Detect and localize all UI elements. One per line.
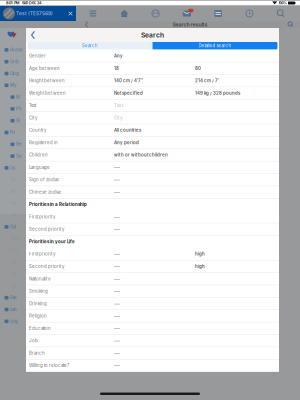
- staticText: Search results: [172, 21, 207, 28]
- staticText: Chinese zodiac: [29, 189, 62, 195]
- button[interactable]: Messages: [171, 6, 202, 21]
- button[interactable]: Smoking: [26, 285, 279, 298]
- button[interactable]: City: [26, 112, 279, 124]
- button[interactable]: Country: [26, 124, 279, 137]
- staticText: Lan: [10, 307, 17, 312]
- button[interactable]: Detailed search: [152, 42, 277, 49]
- button[interactable]: Language: [26, 161, 279, 174]
- staticText: Text: [29, 103, 36, 108]
- button[interactable]: Search: [265, 6, 296, 21]
- staticText: Blo: [10, 189, 17, 194]
- staticText: 214 cm / 7': [195, 78, 219, 83]
- button[interactable]: Profile: [140, 6, 171, 21]
- staticText: City: [114, 115, 123, 120]
- staticText: Search: [82, 43, 98, 48]
- button[interactable]: Bl: [0, 91, 26, 103]
- staticText: 8:01 PM: [6, 1, 19, 5]
- button[interactable]: My: [0, 79, 26, 91]
- staticText: Gender: [29, 53, 46, 59]
- staticText: high: [195, 264, 205, 269]
- button[interactable]: Age between: [26, 62, 279, 75]
- button[interactable]: Uob: [0, 56, 26, 68]
- staticText: Search: [141, 31, 164, 39]
- button[interactable]: Gi: [0, 115, 26, 127]
- staticText: ---: [114, 214, 120, 219]
- button[interactable]: Se: [0, 150, 26, 162]
- button[interactable]: First priority: [26, 248, 279, 260]
- button[interactable]: Lis: [0, 162, 26, 174]
- staticText: Sun Dec 24: [22, 1, 41, 5]
- button[interactable]: Job: [26, 335, 279, 347]
- staticText: Gal: [10, 224, 16, 229]
- staticText: Nationality: [29, 276, 50, 281]
- staticText: ---: [114, 264, 120, 269]
- button[interactable]: Second priority: [26, 223, 279, 236]
- button[interactable]: First priority: [26, 211, 279, 223]
- button[interactable]: Re: [0, 138, 26, 150]
- staticText: Fri: [10, 130, 15, 135]
- button[interactable]: Lan: [0, 304, 26, 315]
- button[interactable]: Table: [202, 6, 234, 21]
- button[interactable]: Lik: [0, 209, 26, 221]
- button[interactable]: Search: [27, 42, 152, 49]
- staticText: Any: [114, 53, 123, 59]
- button[interactable]: Ph: [0, 103, 26, 115]
- staticText: Lis: [10, 165, 15, 170]
- staticText: Second priority: [29, 264, 64, 269]
- button[interactable]: Fri: [0, 127, 26, 138]
- button[interactable]: Text: [26, 99, 279, 112]
- staticText: ---: [114, 350, 120, 356]
- staticText: Detailed search: [198, 43, 231, 48]
- staticText: Bl: [16, 94, 20, 100]
- staticText: ---: [114, 326, 120, 331]
- button[interactable]: Back: [83, 21, 90, 28]
- button[interactable]: Back: [28, 28, 38, 42]
- staticText: Age between: [29, 66, 60, 71]
- button[interactable]: Fee: [0, 292, 26, 304]
- button[interactable]: Log: [0, 315, 26, 327]
- button[interactable]: Willing to relocate?: [26, 359, 279, 372]
- button[interactable]: Education: [26, 322, 279, 335]
- staticText: 80: [195, 66, 201, 71]
- staticText: Country: [29, 128, 46, 133]
- button[interactable]: Religion: [26, 310, 279, 322]
- staticText: Home: [10, 47, 22, 52]
- button[interactable]: Test (TES7569): [0, 6, 76, 21]
- button[interactable]: Menu: [77, 6, 109, 21]
- button[interactable]: Priorities in your Life: [26, 236, 279, 248]
- button[interactable]: Upg: [0, 68, 26, 79]
- staticText: Weight between: [29, 90, 66, 96]
- button[interactable]: Gal: [0, 221, 26, 233]
- staticText: ---: [114, 338, 120, 343]
- button[interactable]: Search: [287, 21, 294, 28]
- staticText: ---: [114, 313, 120, 319]
- button[interactable]: Second priority: [26, 260, 279, 273]
- button[interactable]: Gender: [26, 50, 279, 62]
- button[interactable]: Registered in: [26, 137, 279, 149]
- button[interactable]: Weight between: [26, 87, 279, 99]
- staticText: My: [10, 83, 16, 88]
- staticText: Gi: [16, 118, 20, 123]
- button[interactable]: Height between: [26, 75, 279, 87]
- button[interactable]: Children: [26, 149, 279, 161]
- staticText: 18: [114, 66, 119, 71]
- staticText: Priorities in a Relationship: [29, 202, 87, 207]
- button[interactable]: History: [234, 6, 265, 21]
- button[interactable]: Drinking: [26, 298, 279, 310]
- button[interactable]: Home: [109, 6, 140, 21]
- button[interactable]: Priorities in a Relationship: [26, 199, 279, 211]
- button[interactable]: Nationality: [26, 273, 279, 285]
- button[interactable]: Branch: [26, 347, 279, 359]
- button[interactable]: Sign of zodiac: [26, 174, 279, 186]
- button[interactable]: Chinese zodiac: [26, 186, 279, 199]
- button[interactable]: Home: [0, 44, 26, 56]
